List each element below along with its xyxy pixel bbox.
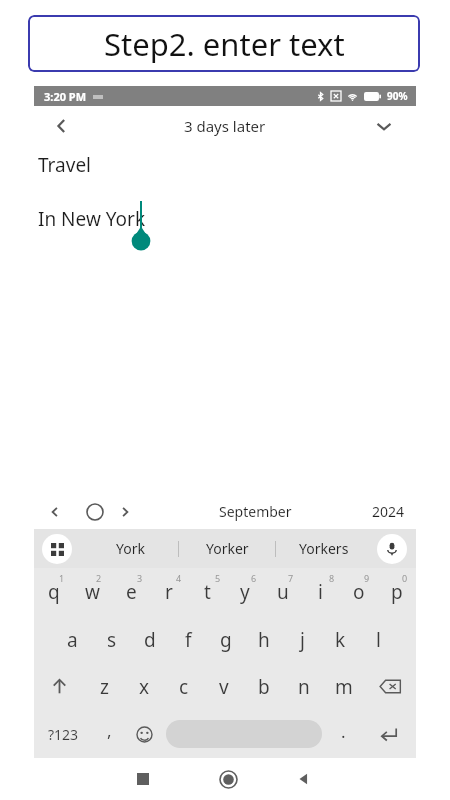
staticText: p	[391, 579, 403, 605]
staticText: z	[100, 674, 109, 700]
staticText: g	[220, 627, 232, 653]
staticText: 6	[251, 572, 257, 584]
button[interactable]: i	[302, 568, 340, 616]
button[interactable]: e	[112, 568, 150, 616]
staticText: o	[353, 579, 365, 605]
button[interactable]: o	[340, 568, 378, 616]
staticText: .	[341, 720, 346, 743]
staticText: i	[318, 579, 323, 605]
button[interactable]: c	[164, 663, 204, 710]
button[interactable]: u	[264, 568, 302, 616]
staticText: e	[126, 579, 137, 605]
staticText: Yorker	[206, 539, 249, 558]
staticText: 90%	[387, 89, 408, 103]
button[interactable]: m	[324, 663, 364, 710]
button[interactable]: w	[73, 568, 112, 616]
staticText: 3:20 PM	[44, 89, 87, 104]
button[interactable]: Shift	[34, 663, 85, 710]
staticText: a	[67, 627, 78, 653]
staticText: u	[277, 579, 289, 605]
button[interactable]: v	[204, 663, 244, 710]
staticText: 1	[59, 572, 65, 584]
button[interactable]: Recents	[126, 762, 160, 796]
staticText: York	[116, 539, 145, 558]
staticText: 9	[364, 572, 370, 584]
button[interactable]: l	[359, 616, 397, 663]
button[interactable]: s	[92, 616, 131, 663]
staticText: 0	[402, 572, 408, 584]
button[interactable]: Yorker	[179, 529, 275, 568]
button[interactable]: ,	[92, 710, 127, 758]
staticText: h	[258, 627, 270, 653]
button[interactable]: b	[244, 663, 284, 710]
button[interactable]: Next	[112, 499, 138, 525]
button[interactable]: a	[53, 616, 92, 663]
staticText: s	[107, 627, 117, 653]
button[interactable]: .	[326, 710, 361, 758]
button[interactable]: Home	[211, 762, 245, 796]
button[interactable]: r	[150, 568, 188, 616]
staticText: ?123	[48, 725, 79, 744]
button[interactable]: Expand	[364, 106, 404, 146]
staticText: ,	[107, 719, 112, 742]
staticText: 3 days later	[184, 116, 266, 136]
staticText: l	[376, 627, 381, 653]
button[interactable]: j	[283, 616, 321, 663]
staticText: t	[204, 579, 211, 605]
staticText: d	[144, 627, 156, 653]
button[interactable]: Yorkers	[276, 529, 372, 568]
button[interactable]: Keyboard options	[42, 534, 72, 564]
button[interactable]: Today	[81, 498, 109, 526]
staticText: k	[335, 627, 346, 653]
staticText: 2	[96, 572, 102, 584]
staticText: September	[219, 502, 292, 521]
button[interactable]: p	[378, 568, 416, 616]
button[interactable]: k	[321, 616, 359, 663]
staticText: 8	[329, 572, 335, 584]
staticText: 3	[137, 572, 143, 584]
button[interactable]: z	[85, 663, 124, 710]
button[interactable]: n	[284, 663, 324, 710]
staticText: 7	[288, 572, 294, 584]
button[interactable]: Emoji	[127, 710, 162, 758]
staticText: j	[300, 627, 305, 653]
staticText: q	[48, 579, 60, 605]
button[interactable]: x	[124, 663, 164, 710]
staticText: 2024	[372, 502, 405, 521]
button[interactable]: Travel	[38, 152, 92, 178]
button[interactable]: d	[131, 616, 169, 663]
staticText: 4	[176, 572, 182, 584]
button[interactable]: Enter	[361, 710, 416, 758]
button[interactable]: q	[34, 568, 73, 616]
staticText: y	[240, 579, 250, 605]
staticText: b	[258, 674, 270, 700]
button[interactable]: g	[207, 616, 245, 663]
staticText: v	[219, 674, 229, 700]
button[interactable]: t	[188, 568, 226, 616]
button[interactable]: ?123	[34, 710, 92, 758]
button[interactable]: h	[245, 616, 283, 663]
button[interactable]: y	[226, 568, 264, 616]
staticText: Yorkers	[299, 539, 349, 558]
staticText: x	[139, 674, 150, 700]
button[interactable]: In New York	[38, 206, 146, 232]
button[interactable]: York	[82, 529, 178, 568]
staticText: m	[335, 674, 353, 700]
button[interactable]: Back	[42, 106, 82, 146]
button[interactable]: Backspace	[364, 663, 416, 710]
button[interactable]: Previous	[42, 499, 68, 525]
button[interactable]: Voice input	[377, 534, 407, 564]
staticText: f	[185, 627, 192, 653]
staticText: r	[165, 579, 173, 605]
button[interactable]: Space	[166, 710, 322, 758]
staticText: 5	[215, 572, 221, 584]
staticText: w	[85, 579, 100, 605]
staticText: n	[298, 674, 310, 700]
staticText: c	[179, 674, 189, 700]
button[interactable]: f	[169, 616, 207, 663]
button[interactable]: Step2. enter text	[28, 15, 420, 72]
button[interactable]: Back	[287, 762, 321, 796]
staticText: Step2. enter text	[104, 23, 345, 65]
